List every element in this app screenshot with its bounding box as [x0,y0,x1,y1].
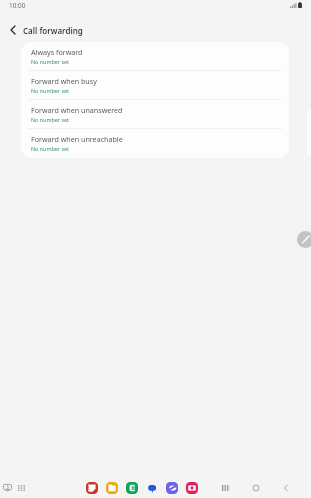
button[interactable]: Forward when busy [21,71,289,100]
button[interactable]: Camera [186,482,198,494]
staticText: 10:00 [9,1,26,10]
staticText: Forward when busy [31,76,97,86]
button[interactable]: Recents [219,482,230,493]
staticText: Call forwarding [23,25,83,36]
button[interactable]: Forward when unreachable [21,129,289,158]
button[interactable]: Always forward [21,42,289,71]
button[interactable]: Back [280,482,291,493]
button[interactable]: Show desktop [2,482,13,493]
button[interactable]: Forward when unanswered [21,100,289,129]
button[interactable]: Samsung Notes [86,482,98,494]
staticText: Forward when unanswered [31,105,123,115]
staticText: No number set [31,58,70,65]
button[interactable]: Messages [146,482,158,494]
button[interactable]: Home [250,482,261,493]
staticText: No number set [31,145,70,152]
staticText: No number set [31,116,70,123]
button[interactable]: Navigate up [5,22,21,38]
button[interactable]: Contacts [126,482,138,494]
button[interactable]: My Files [106,482,118,494]
staticText: Forward when unreachable [31,134,123,144]
button[interactable]: Internet [166,482,178,494]
button[interactable]: Edit [297,231,311,248]
staticText: Always forward [31,47,83,57]
staticText: No number set [31,87,70,94]
button[interactable]: Apps [16,482,27,493]
